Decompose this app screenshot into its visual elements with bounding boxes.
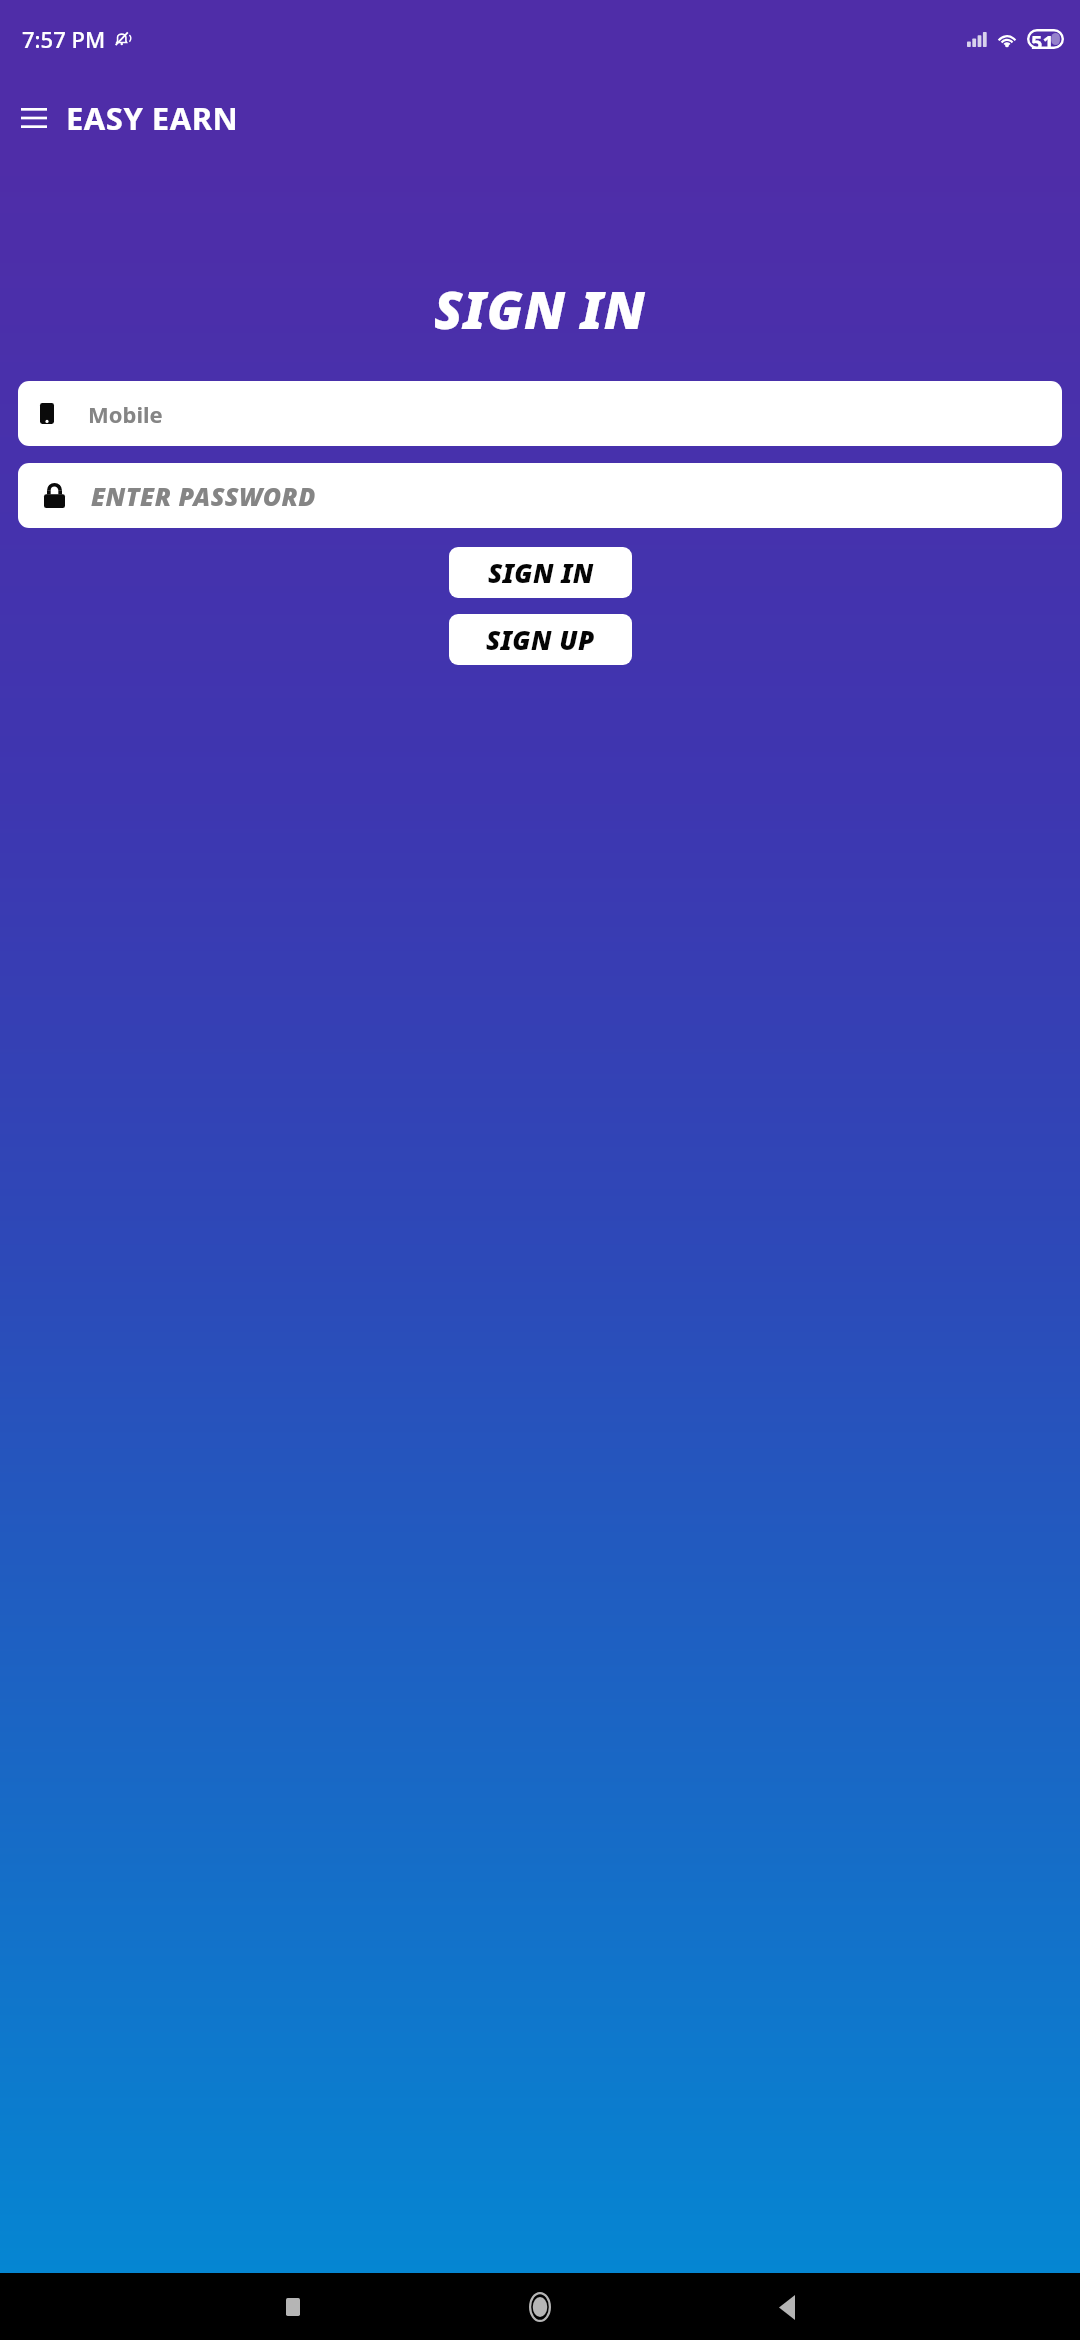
staticText: 51	[1031, 29, 1054, 49]
button[interactable]: Mobile	[18, 381, 1062, 446]
button[interactable]: Back	[763, 2283, 811, 2331]
staticText: SIGN UP	[486, 622, 595, 657]
staticText: 7:57 PM	[22, 24, 106, 54]
staticText: SIGN IN	[488, 555, 594, 590]
staticText: ENTER PASSWORD	[91, 479, 316, 513]
staticText: EASY EARN	[66, 97, 239, 139]
button[interactable]: Recent apps	[269, 2283, 317, 2331]
button[interactable]: ENTER PASSWORD	[18, 463, 1062, 528]
staticText: Mobile	[88, 399, 163, 429]
button[interactable]: Home	[516, 2283, 564, 2331]
button[interactable]: SIGN IN	[449, 547, 632, 598]
button[interactable]: Open navigation menu	[10, 94, 58, 142]
staticText: SIGN IN	[434, 273, 646, 344]
button[interactable]: SIGN UP	[449, 614, 632, 665]
